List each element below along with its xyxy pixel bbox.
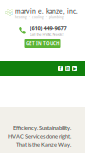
- staticText: in: [65, 65, 69, 72]
- button[interactable]: Facebook: [58, 66, 63, 71]
- staticText: Efficiency. Sustainability.: [13, 124, 71, 131]
- staticText: heating · cooling · plumbing: [15, 15, 64, 19]
- button[interactable]: YouTube: [72, 66, 77, 71]
- staticText: GET IN TOUCH: [26, 40, 59, 47]
- staticText: Call the HVAC Nerds!: [29, 32, 63, 37]
- button[interactable]: (610) 449-9677: [0, 22, 85, 39]
- staticText: (610) 449-9677: [29, 24, 66, 32]
- staticText: marvin e. kanze, inc.: [15, 7, 78, 15]
- button[interactable]: GET IN TOUCH: [24, 39, 60, 48]
- staticText: That is the Kanze Way.: [16, 141, 71, 148]
- staticText: f: [59, 65, 61, 72]
- staticText: ▶: [73, 66, 76, 71]
- button[interactable]: marvin e. kanze, inc.: [0, 0, 85, 22]
- button[interactable]: LinkedIn: [65, 66, 70, 71]
- staticText: HVAC Services done right.: [8, 133, 71, 140]
